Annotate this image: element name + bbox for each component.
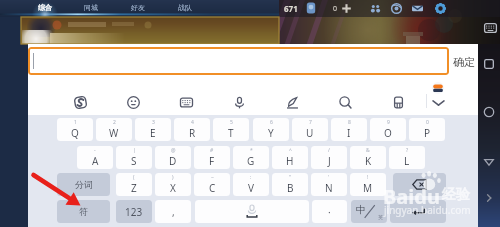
button[interactable]: Settings (435, 3, 446, 14)
staticText: D (169, 154, 177, 168)
button[interactable]: @ (155, 146, 191, 169)
staticText: 8 (348, 119, 351, 126)
staticText: ? (406, 147, 409, 154)
button[interactable]: ' (311, 173, 347, 196)
staticText: 同城 (84, 3, 98, 12)
button[interactable]: 综合 (26, 0, 64, 14)
button[interactable]: Show keyboard (484, 23, 497, 33)
button[interactable]: Space (195, 200, 309, 223)
button[interactable]: 分词 (57, 173, 110, 196)
staticText: 6 (270, 119, 273, 126)
staticText: 分词 (75, 179, 93, 190)
button[interactable]: # (194, 146, 230, 169)
button[interactable]: 3 (135, 118, 171, 141)
button[interactable]: ~ (194, 173, 230, 196)
staticText: jingyan.baidu.com (384, 203, 471, 217)
button[interactable]: 1 (57, 118, 93, 141)
staticText: S (131, 154, 137, 168)
button[interactable]: 4 (174, 118, 210, 141)
staticText: B (287, 181, 294, 195)
staticText: & (366, 147, 370, 154)
staticText: , (172, 205, 175, 219)
button[interactable]: 8 (331, 118, 367, 141)
button[interactable]: ? (389, 146, 425, 169)
staticText: P (424, 126, 431, 140)
button[interactable]: Friends (370, 3, 381, 14)
staticText: R (189, 126, 196, 140)
staticText: - (94, 147, 96, 154)
staticText: F (209, 154, 215, 168)
staticText: * (250, 147, 253, 154)
button[interactable]: Hide keyboard (425, 89, 451, 115)
button[interactable]: ) (155, 173, 191, 196)
button[interactable]: Emoji (120, 89, 146, 115)
staticText: K (365, 154, 372, 168)
button[interactable]: Home (480, 103, 498, 121)
button[interactable]: 123 (116, 200, 152, 223)
button[interactable]: 2 (96, 118, 132, 141)
button[interactable]: - (77, 146, 113, 169)
button[interactable]: 符 (57, 200, 110, 223)
button[interactable]: Currency (306, 2, 316, 14)
staticText: 7 (309, 119, 312, 126)
staticText: T (228, 126, 234, 140)
button[interactable]: Enter (390, 200, 446, 223)
button[interactable]: 9 (370, 118, 406, 141)
button[interactable]: Notes (385, 89, 411, 115)
button[interactable]: 5 (213, 118, 249, 141)
button[interactable]: Sogou (67, 89, 93, 115)
button[interactable]: & (350, 146, 386, 169)
button[interactable] (28, 47, 449, 75)
staticText: X (170, 181, 176, 195)
button[interactable]: 确定 (450, 48, 478, 75)
staticText: Z (131, 181, 137, 195)
staticText: ' (328, 174, 330, 181)
button[interactable]: Recent apps (480, 55, 498, 73)
staticText: M (363, 181, 373, 195)
button[interactable]: Voice input (226, 89, 252, 115)
staticText: C (209, 181, 216, 195)
button[interactable]: : (233, 173, 269, 196)
button[interactable]: 同城 (72, 0, 110, 14)
staticText: ~ (211, 174, 214, 181)
staticText: N (325, 181, 333, 195)
button[interactable]: * (233, 146, 269, 169)
button[interactable]: 0 (409, 118, 445, 141)
staticText: · (328, 205, 331, 219)
button[interactable]: Backspace (393, 173, 446, 196)
staticText: Baidu (383, 183, 440, 210)
staticText: : (250, 174, 252, 181)
button[interactable]: ! (350, 173, 386, 196)
button[interactable]: " (272, 173, 308, 196)
staticText: 671 (284, 3, 298, 14)
staticText: V (248, 181, 254, 195)
button[interactable]: 6 (253, 118, 289, 141)
staticText: A (92, 154, 99, 168)
button[interactable]: Add (341, 3, 352, 14)
staticText: ! (367, 174, 369, 181)
staticText: W (109, 126, 119, 140)
button[interactable]: ( (116, 173, 152, 196)
button[interactable]: , (155, 200, 191, 223)
button[interactable]: Search (332, 89, 358, 115)
button[interactable]: Back (480, 153, 498, 171)
staticText: 战队 (178, 3, 192, 12)
staticText: 2 (113, 119, 116, 126)
staticText: / (328, 147, 330, 154)
button[interactable]: Spectate (391, 3, 402, 14)
button[interactable]: Mail (412, 3, 423, 14)
button[interactable]: 战队 (166, 0, 204, 14)
button[interactable]: ^ (272, 146, 308, 169)
button[interactable]: 7 (292, 118, 328, 141)
button[interactable]: Switch language (351, 200, 387, 223)
button[interactable]: Expand (480, 189, 498, 207)
button[interactable]: | (116, 146, 152, 169)
staticText: L (404, 154, 410, 168)
button[interactable]: 好友 (119, 0, 157, 14)
staticText: ^ (289, 147, 292, 154)
button[interactable]: Handwriting (279, 89, 305, 115)
button[interactable]: Keyboard layout (173, 89, 199, 115)
button[interactable]: · (312, 200, 347, 223)
button[interactable]: / (311, 146, 347, 169)
staticText: G (247, 154, 255, 168)
